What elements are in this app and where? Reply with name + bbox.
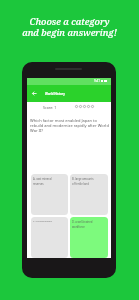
button[interactable]: Back bbox=[30, 89, 38, 97]
staticText: Choose a category and begin answering! bbox=[0, 15, 139, 38]
button[interactable]: C. a strong military bbox=[31, 217, 68, 258]
staticText: 9:41 bbox=[94, 79, 100, 83]
staticText: D. a well-trained workforce bbox=[72, 220, 93, 229]
staticText: Which factor most enabled Japan to rebui… bbox=[30, 118, 109, 133]
staticText: B. large amounts of fertile land bbox=[72, 177, 94, 186]
button[interactable]: A. vast mineral reserves bbox=[31, 174, 68, 215]
staticText: A. vast mineral reserves bbox=[33, 177, 52, 186]
staticText: Score: 1 bbox=[43, 105, 57, 110]
staticText: World History bbox=[45, 92, 65, 96]
staticText: C. a strong military bbox=[33, 220, 52, 223]
button[interactable]: D. a well-trained workforce bbox=[70, 217, 108, 258]
button[interactable]: B. large amounts of fertile land bbox=[70, 174, 108, 215]
